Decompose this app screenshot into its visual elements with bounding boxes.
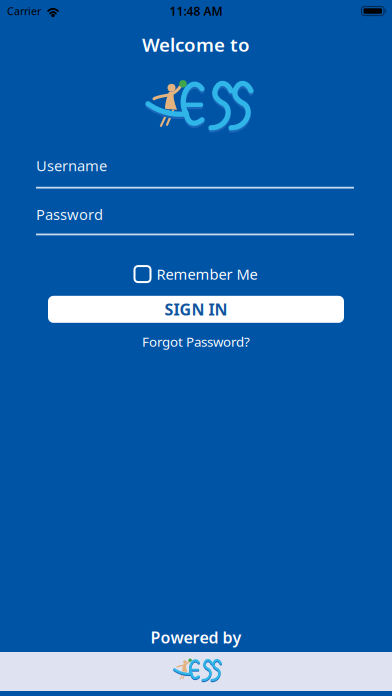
staticText: 11:48 AM xyxy=(169,3,222,19)
staticText: Welcome to xyxy=(142,32,250,57)
staticText: Username xyxy=(36,156,107,175)
button[interactable]: Remember Me xyxy=(134,264,257,284)
staticText: Powered by xyxy=(150,627,241,648)
button[interactable]: Forgot Password? xyxy=(142,333,250,350)
staticText: Password xyxy=(36,205,103,224)
staticText: Forgot Password? xyxy=(142,333,250,350)
staticText: Carrier xyxy=(7,4,41,18)
staticText: Remember Me xyxy=(156,264,257,284)
button[interactable]: Username text field xyxy=(36,156,354,189)
button[interactable]: SIGN IN xyxy=(48,296,344,323)
staticText: SIGN IN xyxy=(164,299,227,320)
button[interactable]: Password text field xyxy=(36,205,354,235)
